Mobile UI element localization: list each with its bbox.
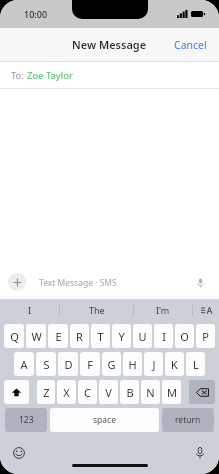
button[interactable]: return (162, 408, 214, 432)
button[interactable]: To: (0, 62, 219, 88)
button[interactable]: Add attachment (8, 273, 26, 291)
staticText: N (146, 385, 155, 400)
button[interactable]: S (36, 352, 56, 376)
staticText: T (97, 329, 104, 344)
staticText: F (87, 357, 93, 372)
button[interactable]: U (133, 324, 152, 348)
button[interactable]: space (50, 408, 159, 432)
staticText: G (107, 357, 116, 372)
button[interactable]: P (196, 324, 215, 348)
staticText: space (93, 414, 116, 426)
staticText: Y (118, 329, 125, 344)
button[interactable]: E (48, 324, 68, 348)
staticText: J (152, 357, 156, 372)
button[interactable]: A (14, 352, 34, 376)
staticText: A (20, 357, 28, 372)
button[interactable]: Backspace (189, 380, 215, 404)
staticText: return (175, 414, 201, 426)
button[interactable]: Emoji (10, 444, 28, 462)
staticText: R (76, 329, 83, 344)
button[interactable]: I'm (134, 299, 192, 321)
staticText: B (126, 385, 134, 400)
staticText: Zoe Taylor (27, 69, 73, 82)
staticText: D (64, 357, 73, 372)
staticText: E (55, 329, 62, 344)
staticText: I'm (156, 304, 170, 316)
button[interactable]: M (162, 380, 181, 404)
staticText: K (171, 357, 178, 372)
staticText: O (180, 329, 189, 344)
staticText: P (202, 329, 209, 344)
button[interactable]: The (60, 299, 133, 321)
button[interactable]: Z (37, 380, 55, 404)
button[interactable]: Y (112, 324, 131, 348)
staticText: S (43, 357, 50, 372)
staticText: The (89, 304, 105, 316)
button[interactable]: I (154, 324, 173, 348)
staticText: X (63, 385, 70, 400)
button[interactable]: F (80, 352, 100, 376)
button[interactable]: T (91, 324, 110, 348)
button[interactable]: D (58, 352, 78, 376)
button[interactable]: Formatting (193, 299, 219, 321)
staticText: L (193, 357, 199, 372)
staticText: 10:00 (24, 8, 48, 20)
button[interactable]: K (165, 352, 184, 376)
staticText: New Message (72, 37, 147, 52)
button[interactable]: W (26, 324, 46, 348)
staticText: U (138, 329, 147, 344)
button[interactable]: Text Message · SMS (32, 273, 211, 292)
staticText: Z (43, 385, 50, 400)
staticText: Cancel (174, 38, 207, 52)
staticText: V (105, 385, 112, 400)
button[interactable]: B (120, 380, 139, 404)
button[interactable]: G (102, 352, 121, 376)
staticText: 123 (19, 414, 34, 426)
button[interactable]: 123 (5, 408, 47, 432)
staticText: I (162, 329, 166, 344)
staticText: Q (10, 329, 19, 344)
staticText: I (28, 304, 32, 316)
button[interactable]: L (186, 352, 205, 376)
button[interactable]: J (144, 352, 163, 376)
button[interactable]: R (70, 324, 89, 348)
other: Dictate (197, 278, 204, 288)
staticText: M (167, 385, 177, 400)
button[interactable]: Shift (4, 380, 29, 404)
button[interactable]: O (175, 324, 194, 348)
button[interactable]: Q (4, 324, 24, 348)
button[interactable]: I (0, 299, 59, 321)
staticText: C (84, 385, 91, 400)
button[interactable]: N (141, 380, 160, 404)
button[interactable]: V (99, 380, 118, 404)
staticText: To: (11, 69, 27, 82)
button[interactable]: Cancel (162, 32, 219, 58)
button[interactable]: X (57, 380, 76, 404)
staticText: W (31, 329, 42, 344)
staticText: H (128, 357, 137, 372)
button[interactable]: C (78, 380, 97, 404)
button[interactable]: Dictation (191, 444, 209, 462)
button[interactable]: H (123, 352, 142, 376)
staticText: Text Message · SMS (39, 277, 197, 289)
